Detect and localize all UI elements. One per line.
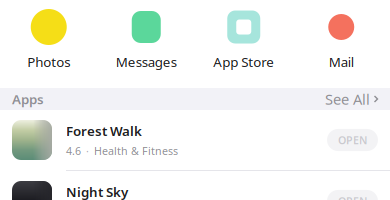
staticText: OPEN (338, 133, 367, 147)
staticText: See All (325, 89, 370, 109)
staticText: 4.6 (66, 144, 81, 158)
button[interactable]: App Store (195, 9, 292, 71)
staticText: · (86, 144, 89, 158)
button[interactable]: Photos (0, 9, 97, 71)
staticText: Health & Fitness (94, 144, 178, 158)
staticText: Apps (12, 90, 44, 108)
staticText: OPEN (338, 194, 367, 200)
staticText: Mail (329, 53, 354, 71)
button[interactable]: OPEN (327, 129, 378, 151)
staticText: App Store (213, 53, 274, 71)
staticText: Night Sky (66, 183, 128, 200)
staticText: Forest Walk (66, 122, 142, 140)
staticText: Photos (27, 53, 70, 71)
button[interactable]: See All (325, 89, 378, 109)
staticText: Messages (116, 53, 177, 71)
button[interactable]: Mail (292, 9, 390, 71)
button[interactable]: OPEN (327, 190, 378, 200)
button[interactable]: Messages (97, 9, 195, 71)
button[interactable]: Forest Walk (0, 110, 390, 170)
button[interactable]: Night Sky (0, 171, 390, 200)
